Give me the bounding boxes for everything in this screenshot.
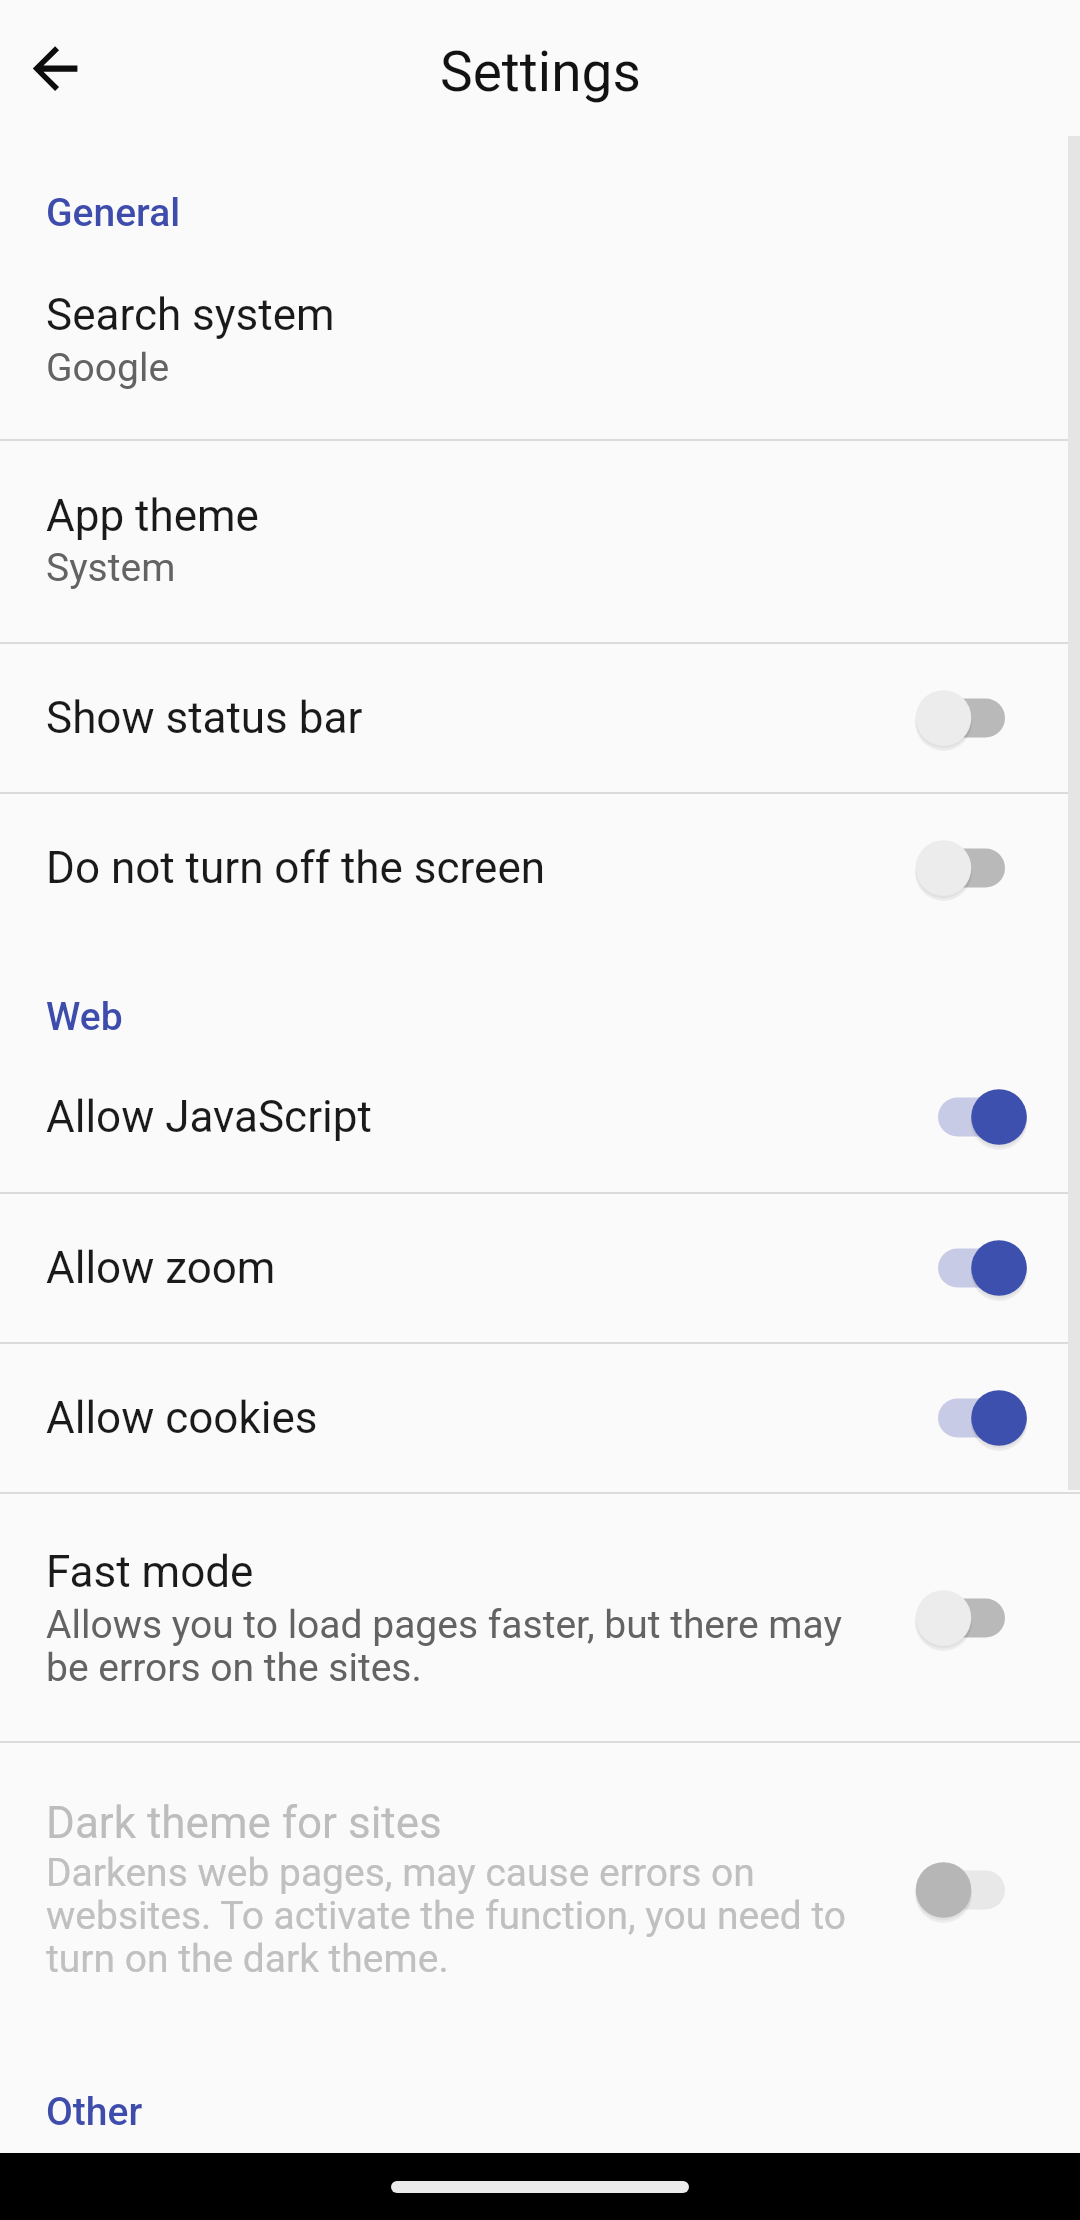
staticText: App theme	[46, 490, 259, 542]
staticText: Allow zoom	[46, 1242, 276, 1294]
staticText: Web	[46, 994, 123, 1040]
button[interactable]: App theme	[0, 441, 1080, 642]
button[interactable]: Allow cookies	[0, 1344, 1080, 1492]
button[interactable]: Search system	[0, 236, 1080, 439]
button[interactable]: Dark theme for sites	[0, 1743, 1080, 2037]
staticText: Fast mode	[46, 1546, 254, 1598]
button[interactable]: Do not turn off the screen	[0, 794, 1080, 942]
button[interactable]: Show status bar	[0, 644, 1080, 792]
staticText: Settings	[440, 40, 641, 104]
staticText: Allow JavaScript	[46, 1091, 372, 1143]
button[interactable]: Allow zoom	[0, 1194, 1080, 1342]
staticText: General	[46, 190, 181, 236]
button[interactable]: Back	[7, 21, 103, 117]
button[interactable]: Allow JavaScript	[0, 1042, 1080, 1192]
staticText: Other	[46, 2089, 143, 2135]
staticText: Allows you to load pages faster, but the…	[46, 1604, 876, 1690]
staticText: Dark theme for sites	[46, 1797, 442, 1849]
staticText: System	[46, 547, 876, 590]
staticText: Allow cookies	[46, 1392, 318, 1444]
staticText: Show status bar	[46, 692, 363, 744]
staticText: Search system	[46, 289, 335, 341]
button[interactable]: Fast mode	[0, 1494, 1080, 1741]
staticText: Do not turn off the screen	[46, 842, 546, 894]
staticText: Darkens web pages, may cause errors on w…	[46, 1852, 876, 1981]
staticText: Google	[46, 347, 876, 390]
